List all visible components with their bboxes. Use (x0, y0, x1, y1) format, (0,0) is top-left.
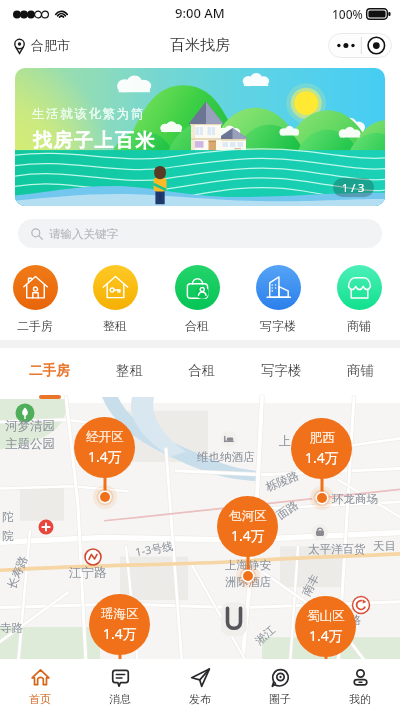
staticText: 圈子 (269, 692, 291, 706)
button[interactable]: More options (328, 33, 392, 58)
staticText: 合肥市 (31, 37, 70, 53)
staticText: 长寿路 (4, 553, 31, 591)
button[interactable]: 合租 (157, 255, 237, 340)
staticText: 主题公园 (5, 436, 55, 452)
staticText: 整租 (116, 362, 143, 379)
staticText: 江宁路 (69, 565, 107, 581)
staticText: 合租 (185, 318, 209, 333)
staticText: 维也纳酒店 (197, 450, 255, 464)
staticText: 1.4万 (231, 526, 265, 545)
staticText: 太平洋百货 (308, 542, 366, 556)
staticText: 蜀山区 (307, 608, 345, 624)
button[interactable]: 发布 (160, 659, 240, 711)
staticText: 二手房 (29, 362, 70, 379)
button[interactable]: 合肥市 (12, 28, 70, 62)
button[interactable]: 瑶海区 (89, 594, 150, 655)
staticText: 院 (2, 529, 14, 543)
button[interactable]: 请输入关键字 (18, 219, 382, 248)
staticText: 1.4万 (305, 448, 339, 467)
staticText: 瑶海区 (101, 606, 139, 622)
staticText: 肥西 (310, 430, 335, 446)
staticText: 100% (332, 6, 363, 22)
staticText: 面路 (274, 498, 301, 522)
button[interactable]: 消息 (80, 659, 160, 711)
button[interactable]: 二手房 (29, 362, 70, 399)
button[interactable]: 蜀山区 (295, 596, 356, 657)
staticText: 商铺 (347, 362, 374, 379)
button[interactable]: 生活就该化繁为简 (15, 68, 385, 206)
staticText: 经开区 (86, 429, 124, 445)
staticText: 消息 (109, 692, 131, 706)
staticText: 百米找房 (170, 36, 230, 55)
button[interactable]: 圈子 (240, 659, 320, 711)
staticText: 玉份 (92, 617, 115, 631)
button[interactable]: 首页 (0, 659, 80, 711)
staticText: 寺路 (0, 621, 23, 635)
staticText: 生活就该化繁为简 (32, 106, 145, 122)
staticText: 上 (279, 433, 291, 448)
staticText: 请输入关键字 (49, 227, 118, 241)
staticText: 陀 (2, 510, 14, 524)
button[interactable]: 整租 (75, 255, 155, 340)
staticText: 环龙商场 (332, 492, 378, 506)
button[interactable]: 肥西 (291, 418, 352, 479)
staticText: 栎陵路 (264, 468, 301, 494)
staticText: 1-3号线 (134, 538, 175, 559)
button[interactable]: 写字楼 (261, 362, 302, 399)
staticText: 洲际酒店 (225, 575, 271, 589)
button[interactable]: 合租 (188, 362, 215, 399)
button[interactable]: 我的 (320, 659, 400, 711)
staticText: 中路 (338, 613, 361, 627)
button[interactable]: 包河区 (217, 496, 278, 557)
staticText: 二手房 (17, 318, 53, 333)
staticText: 9:00 AM (175, 4, 225, 22)
staticText: 天目 (373, 539, 396, 553)
staticText: 淞江 (252, 623, 278, 647)
button[interactable]: 经开区 (74, 417, 135, 478)
button[interactable]: 商铺 (319, 255, 399, 340)
staticText: 上海静安 (225, 558, 271, 572)
staticText: 南丰 (299, 572, 322, 598)
staticText: 1.4万 (103, 624, 137, 643)
staticText: 1.4万 (88, 447, 122, 466)
button[interactable]: 写字楼 (238, 255, 318, 340)
staticText: 河梦清园 (5, 418, 55, 434)
staticText: 商铺 (347, 318, 371, 333)
button[interactable]: 二手房 (0, 255, 75, 340)
staticText: 1 / 3 (342, 180, 365, 195)
staticText: 找房子上百米 (32, 129, 155, 153)
staticText: 整租 (103, 318, 127, 333)
staticText: 合租 (188, 362, 215, 379)
button[interactable]: 商铺 (347, 362, 374, 399)
staticText: 写字楼 (260, 318, 296, 333)
staticText: 首页 (29, 692, 51, 706)
staticText: 发布 (189, 692, 211, 706)
staticText: 包河区 (229, 508, 267, 524)
staticText: 1.4万 (309, 626, 343, 645)
staticText: 我的 (349, 692, 371, 706)
button[interactable]: 整租 (116, 362, 143, 399)
staticText: 写字楼 (261, 362, 302, 379)
